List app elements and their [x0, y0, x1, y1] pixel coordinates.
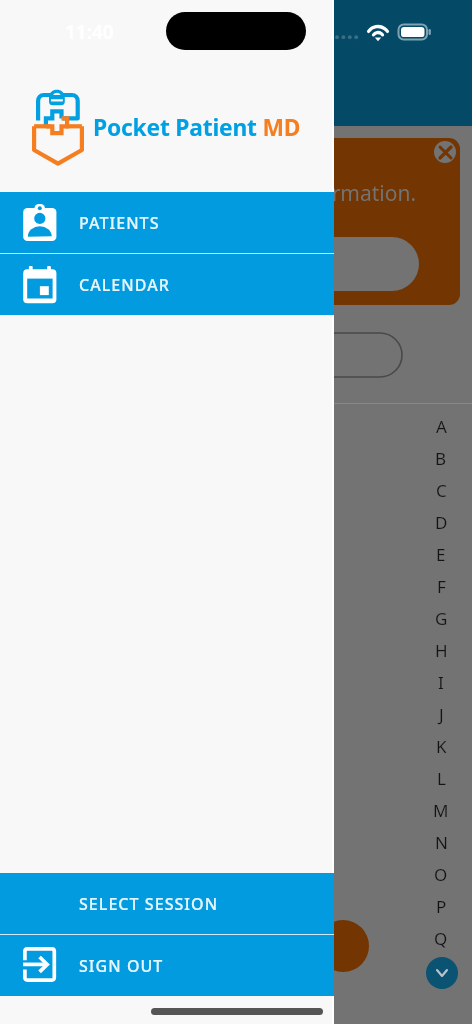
staticText: PATIENTS [79, 212, 160, 234]
button[interactable]: Close [434, 141, 456, 163]
staticText: Select a patient to see the information. [34, 179, 417, 208]
staticText: K [436, 735, 447, 758]
staticText: O [434, 863, 448, 886]
button[interactable]: PATIENTS [0, 192, 334, 253]
button[interactable]: CALENDAR [0, 254, 334, 315]
staticText: M [433, 799, 449, 822]
staticText: F [437, 575, 446, 598]
staticText: J [439, 703, 444, 726]
staticText: CALENDAR [79, 274, 170, 296]
staticText: Q [434, 927, 448, 950]
staticText: P [436, 895, 447, 918]
staticText: D [435, 511, 448, 534]
staticText: E [436, 543, 446, 566]
staticText: SIGN OUT [79, 955, 164, 977]
staticText: G [435, 607, 448, 630]
button[interactable]: SIGN OUT [0, 935, 334, 996]
staticText: A [436, 415, 447, 438]
staticText: H [435, 639, 448, 662]
button[interactable]: SELECT SESSION [0, 873, 334, 934]
staticText: Pocket Patient MD [93, 112, 301, 143]
button[interactable]: Scroll down [426, 957, 458, 989]
staticText: SELECT SESSION [79, 893, 219, 915]
staticText: B [435, 447, 447, 470]
staticText: I [438, 671, 444, 694]
staticText: N [435, 831, 448, 854]
staticText: L [437, 767, 446, 790]
staticText: C [436, 479, 447, 502]
